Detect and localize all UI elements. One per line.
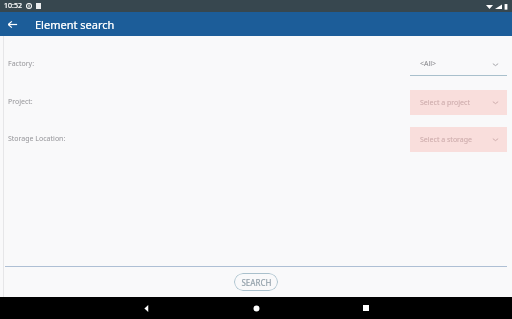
button[interactable]: Back [91,297,201,319]
button[interactable]: <All> [410,53,507,76]
staticText: Storage Location: [8,134,66,144]
button[interactable]: Select a project [410,90,507,115]
staticText: Project: [8,97,33,107]
button[interactable]: Recents [311,297,421,319]
button[interactable]: Select a storage [410,127,507,152]
staticText: Element search [35,17,115,32]
staticText: Select a storage [420,135,473,145]
staticText: 10:52 [4,1,22,11]
staticText: Select a project [420,98,470,108]
staticText: SEARCH [241,277,272,288]
button[interactable]: Back [0,12,24,36]
button[interactable]: SEARCH [234,273,278,291]
staticText: <All> [420,59,437,69]
staticText: Factory: [8,59,35,69]
button[interactable]: Home [201,297,311,319]
